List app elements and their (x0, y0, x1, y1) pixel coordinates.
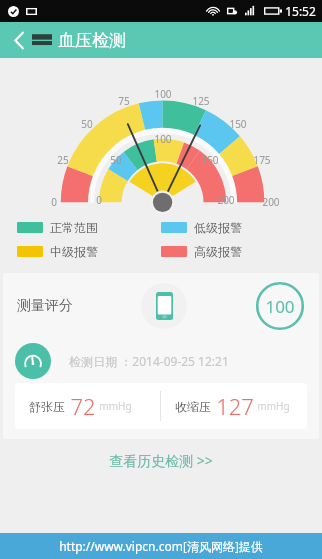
staticText: mmHg (99, 399, 132, 413)
staticText: 0 (96, 193, 102, 207)
staticText: mmHg (257, 399, 290, 413)
staticText: 检测日期 ：2014-09-25 12:21 (69, 353, 229, 369)
staticText: 50 (81, 117, 93, 131)
staticText: 150 (201, 153, 219, 167)
staticText: 中级报警 (50, 244, 98, 259)
staticText: 100 (265, 295, 295, 318)
staticText: 查看历史检测 >> (109, 451, 213, 470)
staticText: 测量评分 (17, 297, 73, 315)
staticText: 50 (110, 153, 122, 167)
staticText: 100 (154, 132, 172, 146)
staticText: 血压检测 (58, 30, 126, 51)
staticText: 25 (57, 153, 69, 167)
staticText: http://www.vipcn.com[清风网络]提供 (59, 538, 263, 554)
staticText: 200 (262, 195, 280, 209)
staticText: 75 (118, 94, 130, 108)
staticText: 收缩压 (175, 399, 211, 414)
button[interactable]: Back (8, 25, 30, 55)
staticText: 175 (253, 153, 271, 167)
staticText: 100 (154, 87, 172, 101)
staticText: 200 (217, 193, 235, 207)
staticText: 低级报警 (194, 220, 242, 235)
button[interactable]: 查看历史检测 >> (3, 443, 319, 477)
staticText: 0 (51, 195, 57, 209)
staticText: 高级报警 (194, 244, 242, 259)
staticText: 舒张压 (29, 399, 65, 414)
staticText: 15:52 (285, 3, 316, 19)
staticText: 正常范围 (50, 220, 98, 235)
staticText: 125 (192, 94, 210, 108)
staticText: 150 (229, 117, 247, 131)
staticText: 127 (216, 391, 254, 421)
staticText: 72 (70, 391, 96, 421)
